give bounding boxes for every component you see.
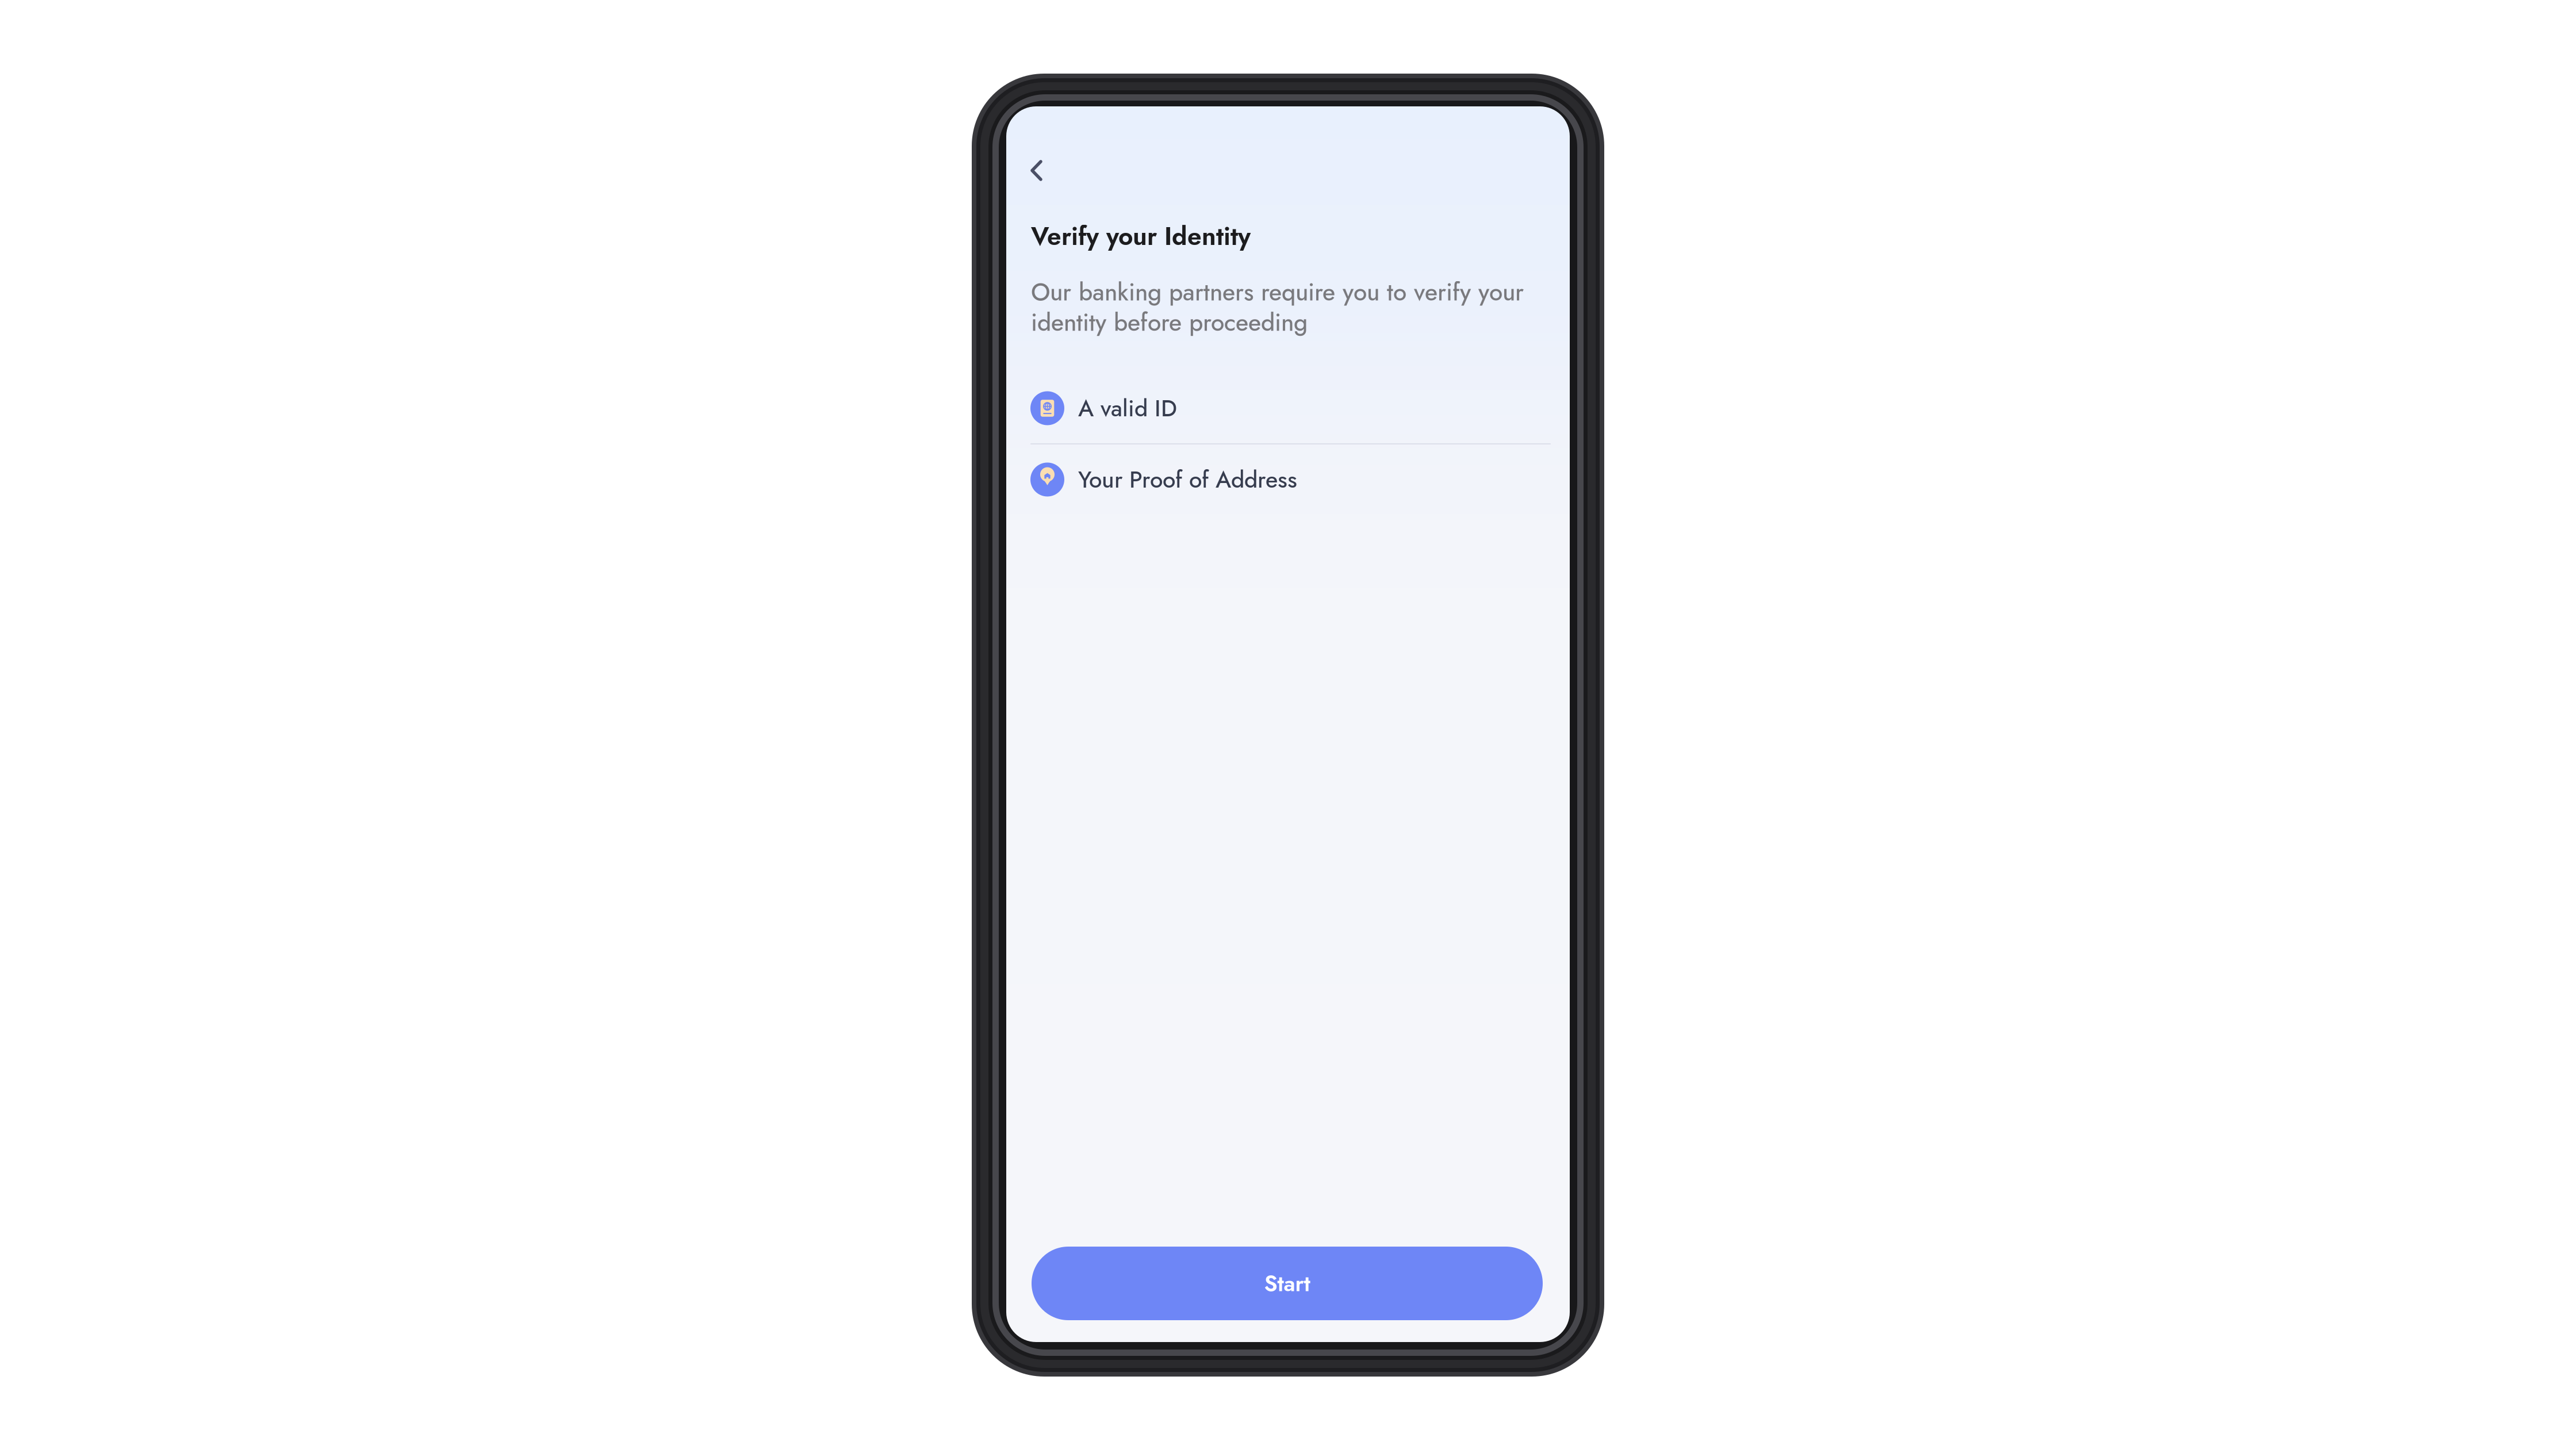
staticText: Your Proof of Address <box>1078 463 1297 496</box>
button[interactable]: Your Proof of Address <box>1030 444 1551 515</box>
staticText: Start <box>1264 1267 1310 1299</box>
staticText: A valid ID <box>1078 391 1177 425</box>
button[interactable]: Start <box>1032 1247 1543 1320</box>
staticText: Our banking partners require you to veri… <box>1031 275 1524 340</box>
button[interactable]: Back <box>1006 106 1058 195</box>
staticText: Verify your Identity <box>1031 218 1251 254</box>
button[interactable]: A valid ID <box>1030 373 1551 443</box>
